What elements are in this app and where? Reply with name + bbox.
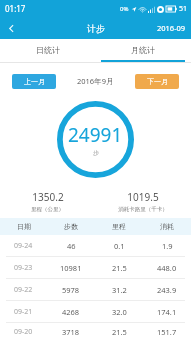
staticText: 2016年9月 (77, 76, 114, 86)
staticText: 消耗 (160, 222, 174, 231)
button[interactable]: 月统计 (95, 39, 191, 60)
staticText: 3718 (62, 327, 80, 337)
staticText: 21.5 (112, 327, 127, 337)
button[interactable]: 上一月 (12, 74, 56, 89)
staticText: 24991 (68, 122, 123, 148)
staticText: 32.0 (112, 307, 127, 317)
staticText: 448.0 (157, 263, 177, 273)
staticText: 1.9 (162, 241, 173, 251)
staticText: 09-22 (14, 285, 33, 295)
staticText: 5978 (62, 285, 80, 295)
staticText: 步 (93, 149, 99, 157)
staticText: 下一月 (147, 77, 168, 86)
staticText: 上一月 (24, 77, 45, 86)
button[interactable]: Back (0, 17, 22, 39)
button[interactable]: 09-22 (0, 279, 191, 300)
button[interactable]: 2016-09 (157, 23, 191, 33)
button[interactable]: 09-21 (0, 301, 191, 322)
staticText: 09-20 (14, 327, 33, 337)
staticText: 0% (120, 5, 129, 13)
staticText: 计步 (87, 23, 105, 34)
button[interactable]: 09-20 (0, 323, 191, 340)
staticText: 21.5 (112, 263, 127, 273)
staticText: 10981 (60, 263, 82, 273)
staticText: 51 (179, 4, 188, 14)
button[interactable]: 日统计 (0, 39, 95, 60)
staticText: 151.7 (157, 327, 177, 337)
staticText: 里程（公里） (31, 206, 64, 213)
staticText: 46 (67, 241, 76, 251)
button[interactable]: 09-23 (0, 257, 191, 278)
staticText: 4268 (62, 307, 80, 317)
staticText: 月统计 (131, 45, 155, 55)
staticText: 日期 (17, 222, 31, 231)
staticText: 1019.5 (127, 190, 159, 204)
staticText: 里程 (112, 222, 126, 231)
staticText: 1350.2 (32, 190, 64, 204)
staticText: 09-23 (14, 263, 33, 273)
staticText: 174.1 (157, 307, 177, 317)
staticText: 01:17 (5, 3, 26, 14)
button[interactable]: 09-24 (0, 235, 191, 256)
staticText: 31.2 (112, 285, 127, 295)
staticText: 0.1 (114, 241, 125, 251)
staticText: 消耗卡路里（千卡） (118, 206, 168, 213)
button[interactable]: 下一月 (135, 74, 179, 89)
staticText: 09-24 (14, 241, 33, 251)
staticText: 步数 (64, 222, 78, 231)
staticText: 日统计 (36, 45, 60, 55)
staticText: 243.9 (157, 285, 177, 295)
staticText: 09-21 (14, 307, 33, 317)
